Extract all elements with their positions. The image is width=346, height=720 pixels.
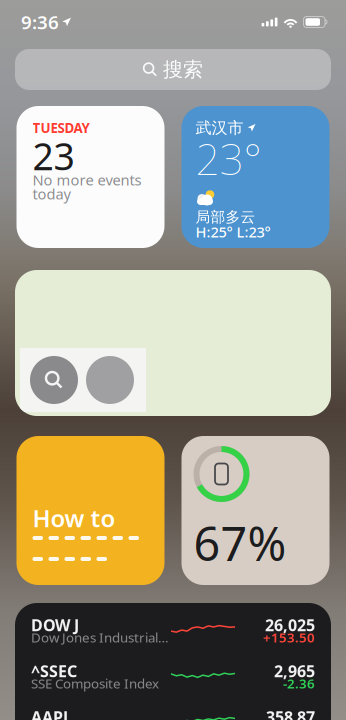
staticText: 2,965	[274, 660, 315, 682]
staticText: How to	[32, 502, 115, 534]
staticText: H:25° L:23°	[195, 222, 270, 241]
staticText: AAPL	[31, 706, 72, 720]
staticText: 搜索	[163, 57, 203, 82]
staticText: Dow Jones Industrial A...	[31, 628, 171, 646]
staticText: today	[32, 184, 70, 203]
staticText: +153.50	[263, 628, 315, 646]
staticText: 23	[32, 131, 74, 181]
staticText: TUESDAY	[32, 119, 89, 137]
staticText: 26,025	[265, 614, 315, 636]
button[interactable]: 武汉市	[181, 106, 329, 248]
button[interactable]: How to	[16, 436, 164, 585]
staticText: ^SSEC	[31, 660, 77, 682]
button[interactable]: TUESDAY	[16, 106, 164, 248]
button[interactable]	[15, 270, 331, 416]
staticText: 67%	[193, 512, 286, 574]
staticText: 358.87	[266, 706, 315, 720]
button[interactable]: 67%	[181, 436, 329, 585]
button[interactable]: ^SSEC	[31, 657, 315, 691]
staticText: 9:36	[21, 10, 59, 34]
staticText: DOW J	[31, 614, 79, 636]
button[interactable]: AAPL	[31, 703, 315, 720]
staticText: 武汉市	[195, 118, 243, 138]
button[interactable]: 搜索	[15, 49, 331, 90]
staticText: 23°	[195, 130, 261, 187]
staticText: 局部多云	[195, 208, 255, 226]
staticText: -2.36	[283, 674, 315, 692]
staticText: No more events	[32, 170, 141, 189]
button[interactable]: DOW J	[31, 611, 315, 645]
staticText: SSE Composite Index	[31, 674, 159, 692]
